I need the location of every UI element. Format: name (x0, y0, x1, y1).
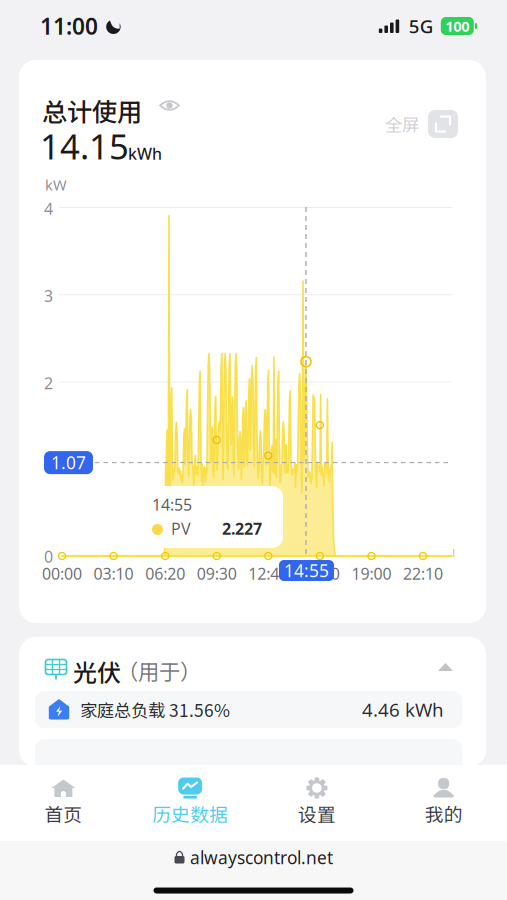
staticText: 全屏 (385, 111, 419, 137)
staticText: 1.07 (51, 451, 86, 474)
button[interactable]: 历史数据 (127, 765, 254, 841)
staticText: kW (45, 175, 67, 194)
staticText: 19:00 (351, 563, 391, 584)
staticText: 09:30 (197, 563, 237, 584)
button[interactable]: 设置 (253, 765, 380, 841)
staticText: 00:00 (42, 563, 82, 584)
staticText: 家庭总负载 31.56% (80, 697, 230, 722)
staticText: 100 (445, 16, 469, 36)
button[interactable]: Collapse (428, 653, 463, 681)
staticText: 12:40 (248, 563, 288, 584)
staticText: 2 (44, 372, 53, 394)
staticText: 我的 (425, 800, 463, 827)
button[interactable]: 全屏 (385, 110, 458, 138)
staticText: 06:20 (145, 563, 185, 584)
staticText: 15:50 (300, 563, 340, 584)
staticText: kWh (128, 143, 162, 164)
staticText: 2.227 (222, 518, 262, 539)
staticText: 14.15 (40, 123, 129, 169)
staticText: 光伏 (73, 654, 121, 689)
staticText: 22:10 (403, 563, 443, 584)
button[interactable]: alwayscontrol.net (174, 835, 333, 879)
staticText: 设置 (298, 800, 336, 827)
staticText: PV (171, 518, 191, 539)
staticText: 4.46 kWh (362, 697, 444, 722)
staticText: 历史数据 (152, 800, 228, 827)
staticText: alwayscontrol.net (190, 846, 333, 869)
button[interactable]: 我的 (380, 765, 507, 841)
staticText: 总计使用 (42, 92, 142, 129)
staticText: 11:00 (40, 11, 98, 41)
staticText: 14:55 (152, 494, 192, 515)
staticText: 14:55 (284, 559, 329, 582)
staticText: （用于） (117, 655, 201, 686)
staticText: 5G (409, 14, 434, 38)
staticText: 03:10 (94, 563, 134, 584)
staticText: 3 (44, 285, 53, 306)
staticText: 首页 (44, 800, 82, 827)
staticText: 0 (44, 546, 53, 567)
button[interactable]: 首页 (0, 765, 127, 841)
staticText: 4 (44, 198, 53, 219)
button[interactable]: 家庭总负载 31.56% (35, 691, 462, 728)
